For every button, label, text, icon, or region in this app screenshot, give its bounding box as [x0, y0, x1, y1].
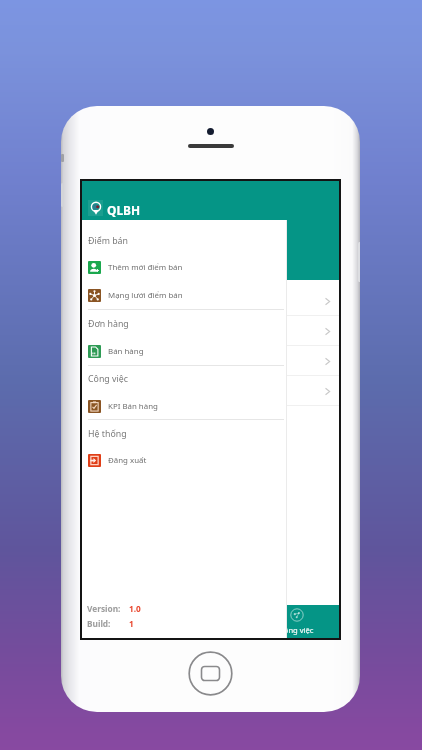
staticText: KPI Bán hàng: [108, 401, 158, 412]
staticText: Build:: [87, 618, 111, 629]
button[interactable]: Open: [82, 376, 339, 406]
button[interactable]: KPI Bán hàng: [82, 393, 287, 420]
staticText: Đơn hàng: [88, 318, 129, 330]
staticText: Mạng lưới điểm bán: [108, 290, 183, 301]
button[interactable]: Điểm bán: [106, 605, 143, 635]
staticText: Hệ thống: [88, 428, 127, 440]
button[interactable]: Open: [82, 346, 339, 376]
button[interactable]: Đăng xuất: [82, 447, 287, 474]
staticText: Bán hàng: [108, 346, 144, 357]
other: Open: [323, 357, 332, 366]
staticText: 1: [129, 618, 134, 629]
staticText: QLBH: [107, 202, 141, 218]
button[interactable]: Thêm mới điểm bán: [82, 254, 287, 281]
button[interactable]: Open: [82, 286, 339, 316]
staticText: Điểm bán: [107, 625, 142, 635]
staticText: 1.0: [129, 603, 141, 614]
other: Open: [323, 327, 332, 336]
staticText: Đăng xuất: [108, 455, 147, 466]
staticText: Công việc: [279, 625, 314, 635]
button[interactable]: Bán hàng: [82, 338, 287, 365]
button[interactable]: Open: [82, 316, 339, 346]
staticText: Thêm mới điểm bán: [108, 262, 183, 273]
other: Open: [323, 297, 332, 306]
button[interactable]: Mạng lưới điểm bán: [82, 282, 287, 309]
staticText: Công việc: [88, 373, 128, 385]
staticText: Điểm bán: [88, 235, 128, 247]
button[interactable]: Công việc: [278, 605, 315, 635]
other: Open: [323, 387, 332, 396]
staticText: Version:: [87, 603, 121, 614]
